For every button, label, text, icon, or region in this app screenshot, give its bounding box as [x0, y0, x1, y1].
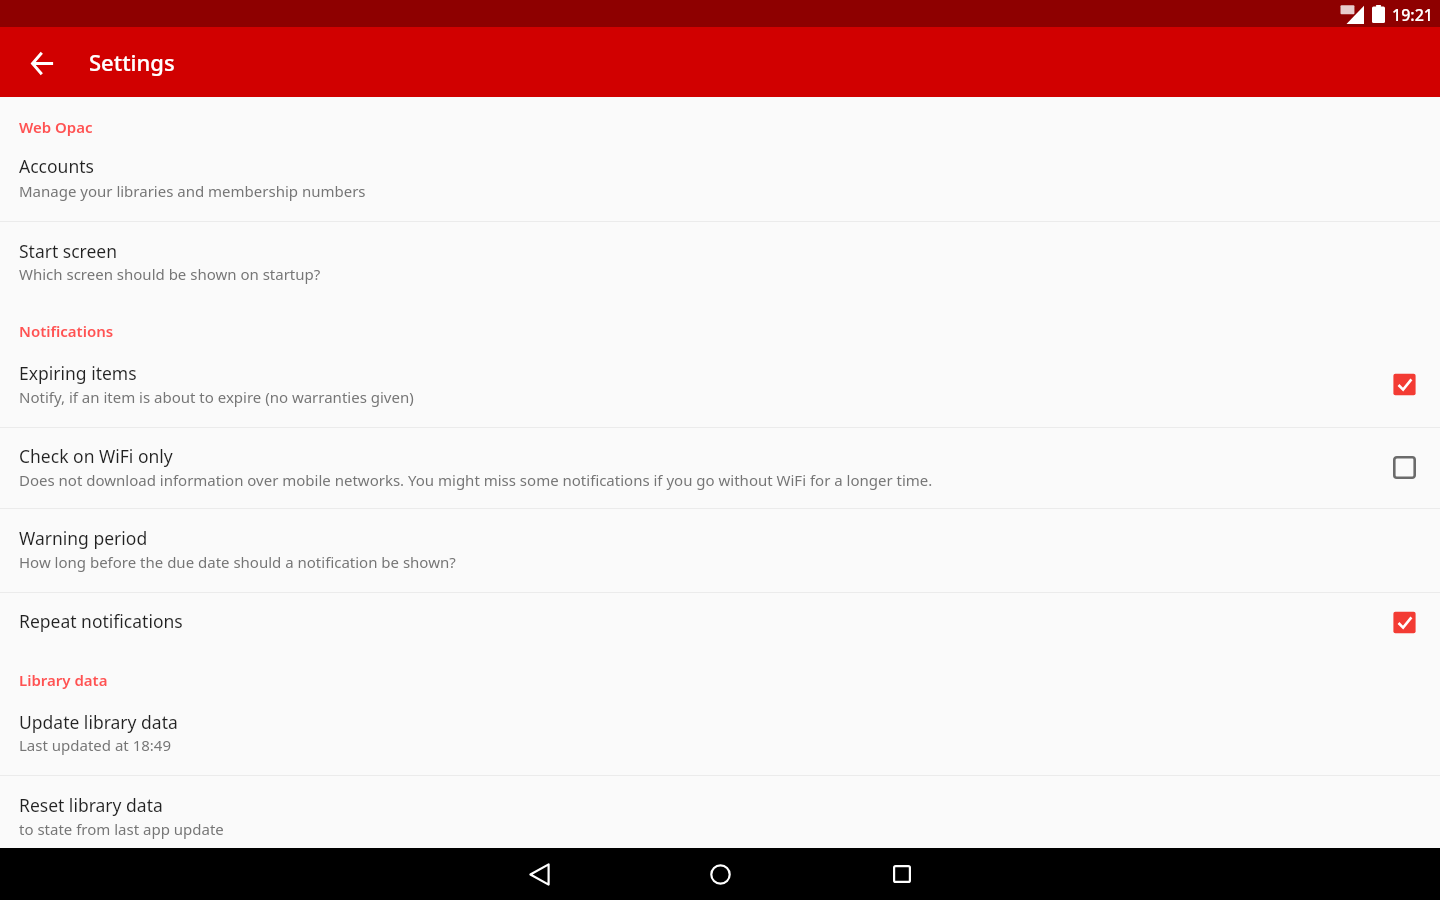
button[interactable]: Expiring items [0, 346, 1440, 427]
staticText: Update library data [19, 710, 178, 734]
staticText: Web Opac [19, 117, 93, 137]
staticText: Does not download information over mobil… [19, 470, 933, 490]
other: Battery [1372, 5, 1385, 23]
button[interactable]: Accounts [0, 98, 1440, 221]
button[interactable]: Expiring items [1388, 368, 1420, 400]
button[interactable]: Repeat notifications [0, 593, 1440, 655]
button[interactable]: Back [20, 40, 64, 84]
staticText: Notify, if an item is about to expire (n… [19, 387, 414, 407]
button[interactable]: Home [697, 851, 743, 897]
button[interactable]: Start screen [0, 222, 1440, 304]
staticText: Manage your libraries and membership num… [19, 181, 366, 201]
staticText: Check on WiFi only [19, 444, 173, 468]
staticText: How long before the due date should a no… [19, 552, 456, 572]
staticText: Notifications [19, 321, 114, 341]
staticText: Expiring items [19, 361, 137, 385]
button[interactable]: Repeat notifications [1388, 606, 1420, 638]
button[interactable]: Check on WiFi only [1388, 451, 1420, 483]
button[interactable]: Reset library data [0, 776, 1440, 848]
button[interactable]: Back [516, 851, 562, 897]
staticText: Library data [19, 670, 108, 690]
staticText: Which screen should be shown on startup? [19, 264, 321, 284]
button[interactable]: Warning period [0, 509, 1440, 592]
staticText: Reset library data [19, 793, 163, 817]
staticText: Last updated at 18:49 [19, 735, 171, 755]
staticText: Warning period [19, 526, 148, 550]
button[interactable]: Update library data [0, 697, 1440, 775]
button[interactable]: Check on WiFi only [0, 428, 1440, 508]
staticText: Accounts [19, 154, 94, 178]
button[interactable]: Recents [879, 851, 925, 897]
staticText: Start screen [19, 239, 118, 263]
staticText: to state from last app update [19, 819, 224, 839]
staticText: 19:21 [1392, 4, 1433, 26]
staticText: Settings [89, 47, 175, 77]
other: Mobile signal [1340, 5, 1364, 24]
staticText: Repeat notifications [19, 609, 183, 633]
